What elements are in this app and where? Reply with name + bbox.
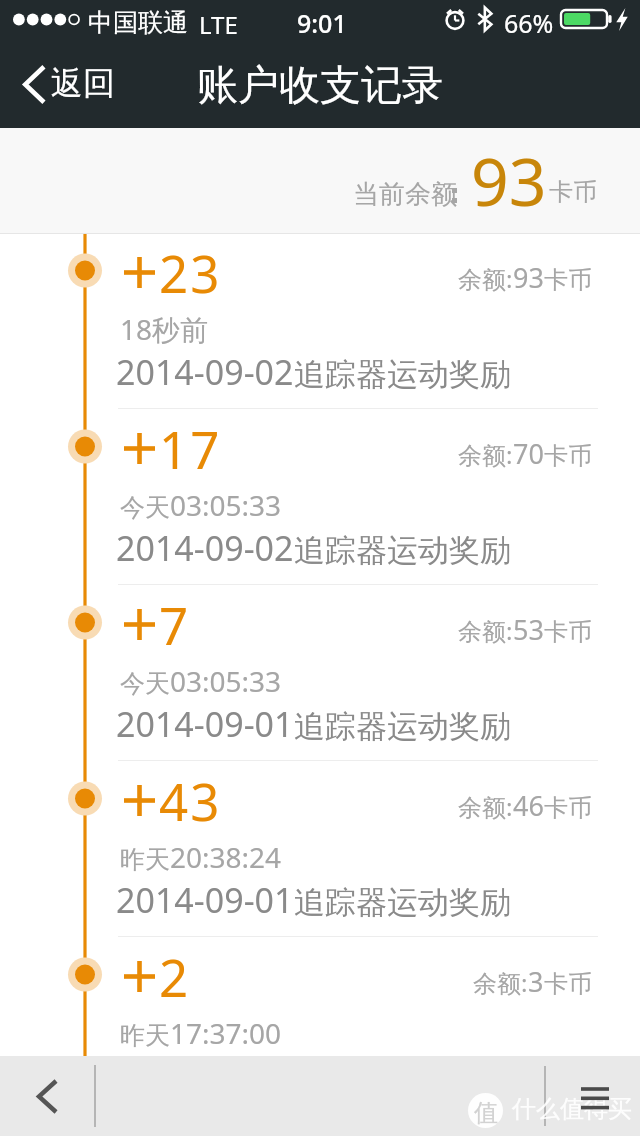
staticText: LTE [199,8,238,41]
staticText: 18秒前 [120,310,209,348]
button[interactable]: 43 [0,762,640,938]
staticText: 66% [504,6,554,40]
staticText: 卡币 [544,441,592,471]
staticText: 2014-09-01 [116,701,294,747]
staticText: 03:05:33 [170,662,282,700]
staticText: 账户收支记录 [197,60,443,112]
staticText: 追踪器运动奖励 [294,355,511,394]
button[interactable]: 17 [0,410,640,586]
staticText: 2014-09-01 [116,877,294,923]
staticText: 追踪器运动奖励 [294,707,511,746]
staticText: 卡币 [549,177,597,207]
staticText: 2 [159,942,191,1011]
staticText: 23 [159,238,222,307]
staticText: 卡币 [544,617,592,647]
staticText: 什么值得买 [512,1094,632,1124]
staticText: 7 [159,590,191,659]
staticText: 93 [513,259,544,296]
staticText: 17:37:00 [170,1014,282,1052]
staticText: 卡币 [544,969,592,999]
staticText: 追踪器运动奖励 [294,531,511,570]
staticText: 追踪器运动奖励 [294,883,511,922]
staticText: 9:01 [297,6,347,40]
staticText: 70 [513,435,544,472]
staticText: 余额: [458,614,513,647]
staticText: 返回 [51,63,115,103]
staticText: 余额: [473,966,528,999]
staticText: 中国联通 [88,7,188,38]
staticText: 今天 [120,492,170,523]
staticText: 43 [159,766,222,835]
button[interactable]: Back [0,1056,95,1136]
staticText: 2014-09-02 [116,349,294,395]
staticText: 2014-09-02 [116,525,294,571]
staticText: 昨天 [120,1020,170,1051]
staticText: 余额: [458,790,513,823]
button[interactable]: Menu [550,1056,640,1136]
staticText: 53 [513,611,544,648]
staticText: 3 [528,963,544,1000]
button[interactable]: 7 [0,586,640,762]
staticText: 余额: [458,438,513,471]
staticText: 昨天 [120,844,170,875]
staticText: 卡币 [544,793,592,823]
staticText: 今天 [120,668,170,699]
staticText: 46 [513,787,544,824]
button[interactable]: 23 [0,234,640,410]
button[interactable]: 2 [0,938,640,1114]
staticText: 余额: [458,262,513,295]
staticText: 卡币 [544,265,592,295]
staticText: 03:05:33 [170,486,282,524]
staticText: 值 [474,1098,498,1128]
staticText: 20:38:24 [170,838,282,876]
staticText: 当前余额 [353,178,457,211]
button[interactable]: 返回 [0,54,131,114]
staticText: 93 [471,135,547,225]
staticText: 17 [159,414,222,483]
